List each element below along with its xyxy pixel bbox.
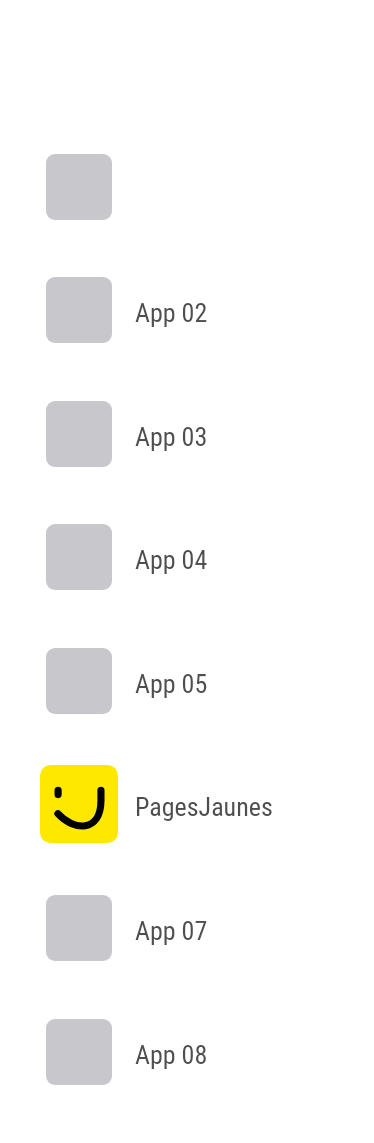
staticText: PagesJaunes bbox=[135, 792, 273, 822]
button[interactable]: App 02 bbox=[0, 248, 374, 372]
staticText: App 05 bbox=[135, 669, 208, 699]
staticText: App 04 bbox=[135, 545, 208, 575]
button[interactable]: App 05 bbox=[0, 619, 374, 743]
staticText: App 07 bbox=[135, 916, 208, 946]
button[interactable]: App 1 bbox=[0, 125, 374, 249]
button[interactable]: App 08 bbox=[0, 990, 374, 1114]
button[interactable]: App 04 bbox=[0, 495, 374, 619]
staticText: App 02 bbox=[135, 298, 208, 328]
button[interactable]: PagesJaunes bbox=[0, 742, 374, 866]
button[interactable]: App 07 bbox=[0, 866, 374, 990]
staticText: App 08 bbox=[135, 1040, 208, 1070]
staticText: App 03 bbox=[135, 422, 208, 452]
button[interactable]: App 03 bbox=[0, 372, 374, 496]
